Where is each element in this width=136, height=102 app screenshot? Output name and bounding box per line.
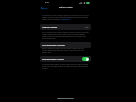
button[interactable]: Optimized Battery Charging — [82, 57, 89, 61]
staticText: To reduce battery aging, iPhone learns f… — [42, 63, 89, 69]
staticText: Maximum Capacity — [42, 26, 58, 28]
staticText: 92% — [85, 26, 89, 28]
button[interactable]: Maximum Capacity — [40, 24, 91, 30]
button[interactable]: Optimized Battery Charging — [40, 56, 91, 62]
staticText: Built-in dynamic software and hardware s… — [42, 47, 89, 53]
staticText: 9:41 — [45, 1, 49, 4]
button[interactable]: Battery — [41, 6, 48, 9]
staticText: This is a measure of battery capacity re… — [42, 31, 89, 39]
staticText: Battery Health — [59, 6, 73, 9]
staticText: The battery on your iPhone is designed t… — [42, 14, 89, 20]
button[interactable]: Peak Performance Capability — [40, 42, 91, 48]
staticText: Battery — [42, 7, 48, 9]
staticText: Optimized Battery Charging — [42, 58, 65, 60]
staticText: Peak Performance Capability — [42, 44, 65, 46]
